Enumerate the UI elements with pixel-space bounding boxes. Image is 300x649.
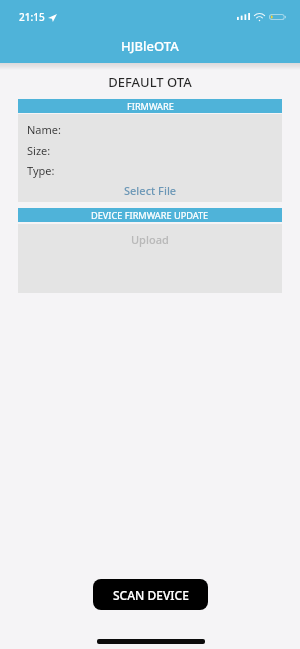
other: Wi-Fi — [255, 14, 264, 21]
other: Battery low — [269, 14, 286, 20]
staticText: Type: — [27, 163, 55, 178]
staticText: Size: — [27, 143, 51, 158]
button[interactable]: Upload — [18, 228, 282, 251]
staticText: 21:15 — [19, 10, 45, 24]
staticText: DEVICE FIRMWARE UPDATE — [91, 209, 209, 222]
staticText: DEFAULT OTA — [108, 73, 192, 91]
button[interactable]: Select File — [18, 179, 282, 202]
staticText: Upload — [131, 232, 169, 247]
staticText: HJBleOTA — [121, 37, 179, 55]
other: Location active — [48, 14, 57, 22]
staticText: Name: — [27, 122, 61, 137]
button[interactable]: SCAN DEVICE — [93, 579, 208, 610]
staticText: Select File — [124, 183, 177, 198]
staticText: FIRMWARE — [127, 100, 174, 113]
staticText: SCAN DEVICE — [113, 587, 189, 603]
other: Cellular signal — [237, 13, 250, 20]
